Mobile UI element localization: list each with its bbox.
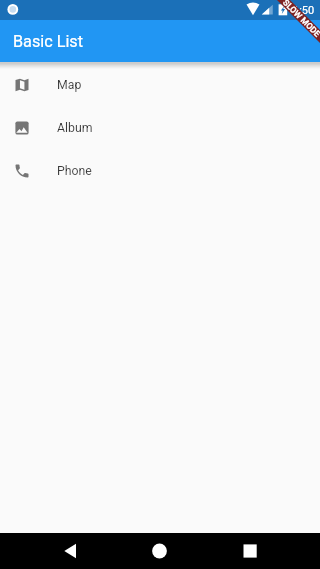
staticText: Map <box>57 78 82 92</box>
button[interactable]: Album <box>0 106 320 149</box>
button[interactable]: Back <box>52 533 88 569</box>
button[interactable]: Recent apps <box>232 533 268 569</box>
staticText: Phone <box>57 164 92 178</box>
button[interactable]: Home <box>142 533 178 569</box>
button[interactable]: Phone <box>0 149 320 192</box>
staticText: Basic List <box>13 32 83 51</box>
staticText: 1:50 <box>293 4 315 17</box>
other: Slow mode <box>268 0 320 52</box>
button[interactable]: Map <box>0 63 320 106</box>
staticText: Album <box>57 121 93 135</box>
